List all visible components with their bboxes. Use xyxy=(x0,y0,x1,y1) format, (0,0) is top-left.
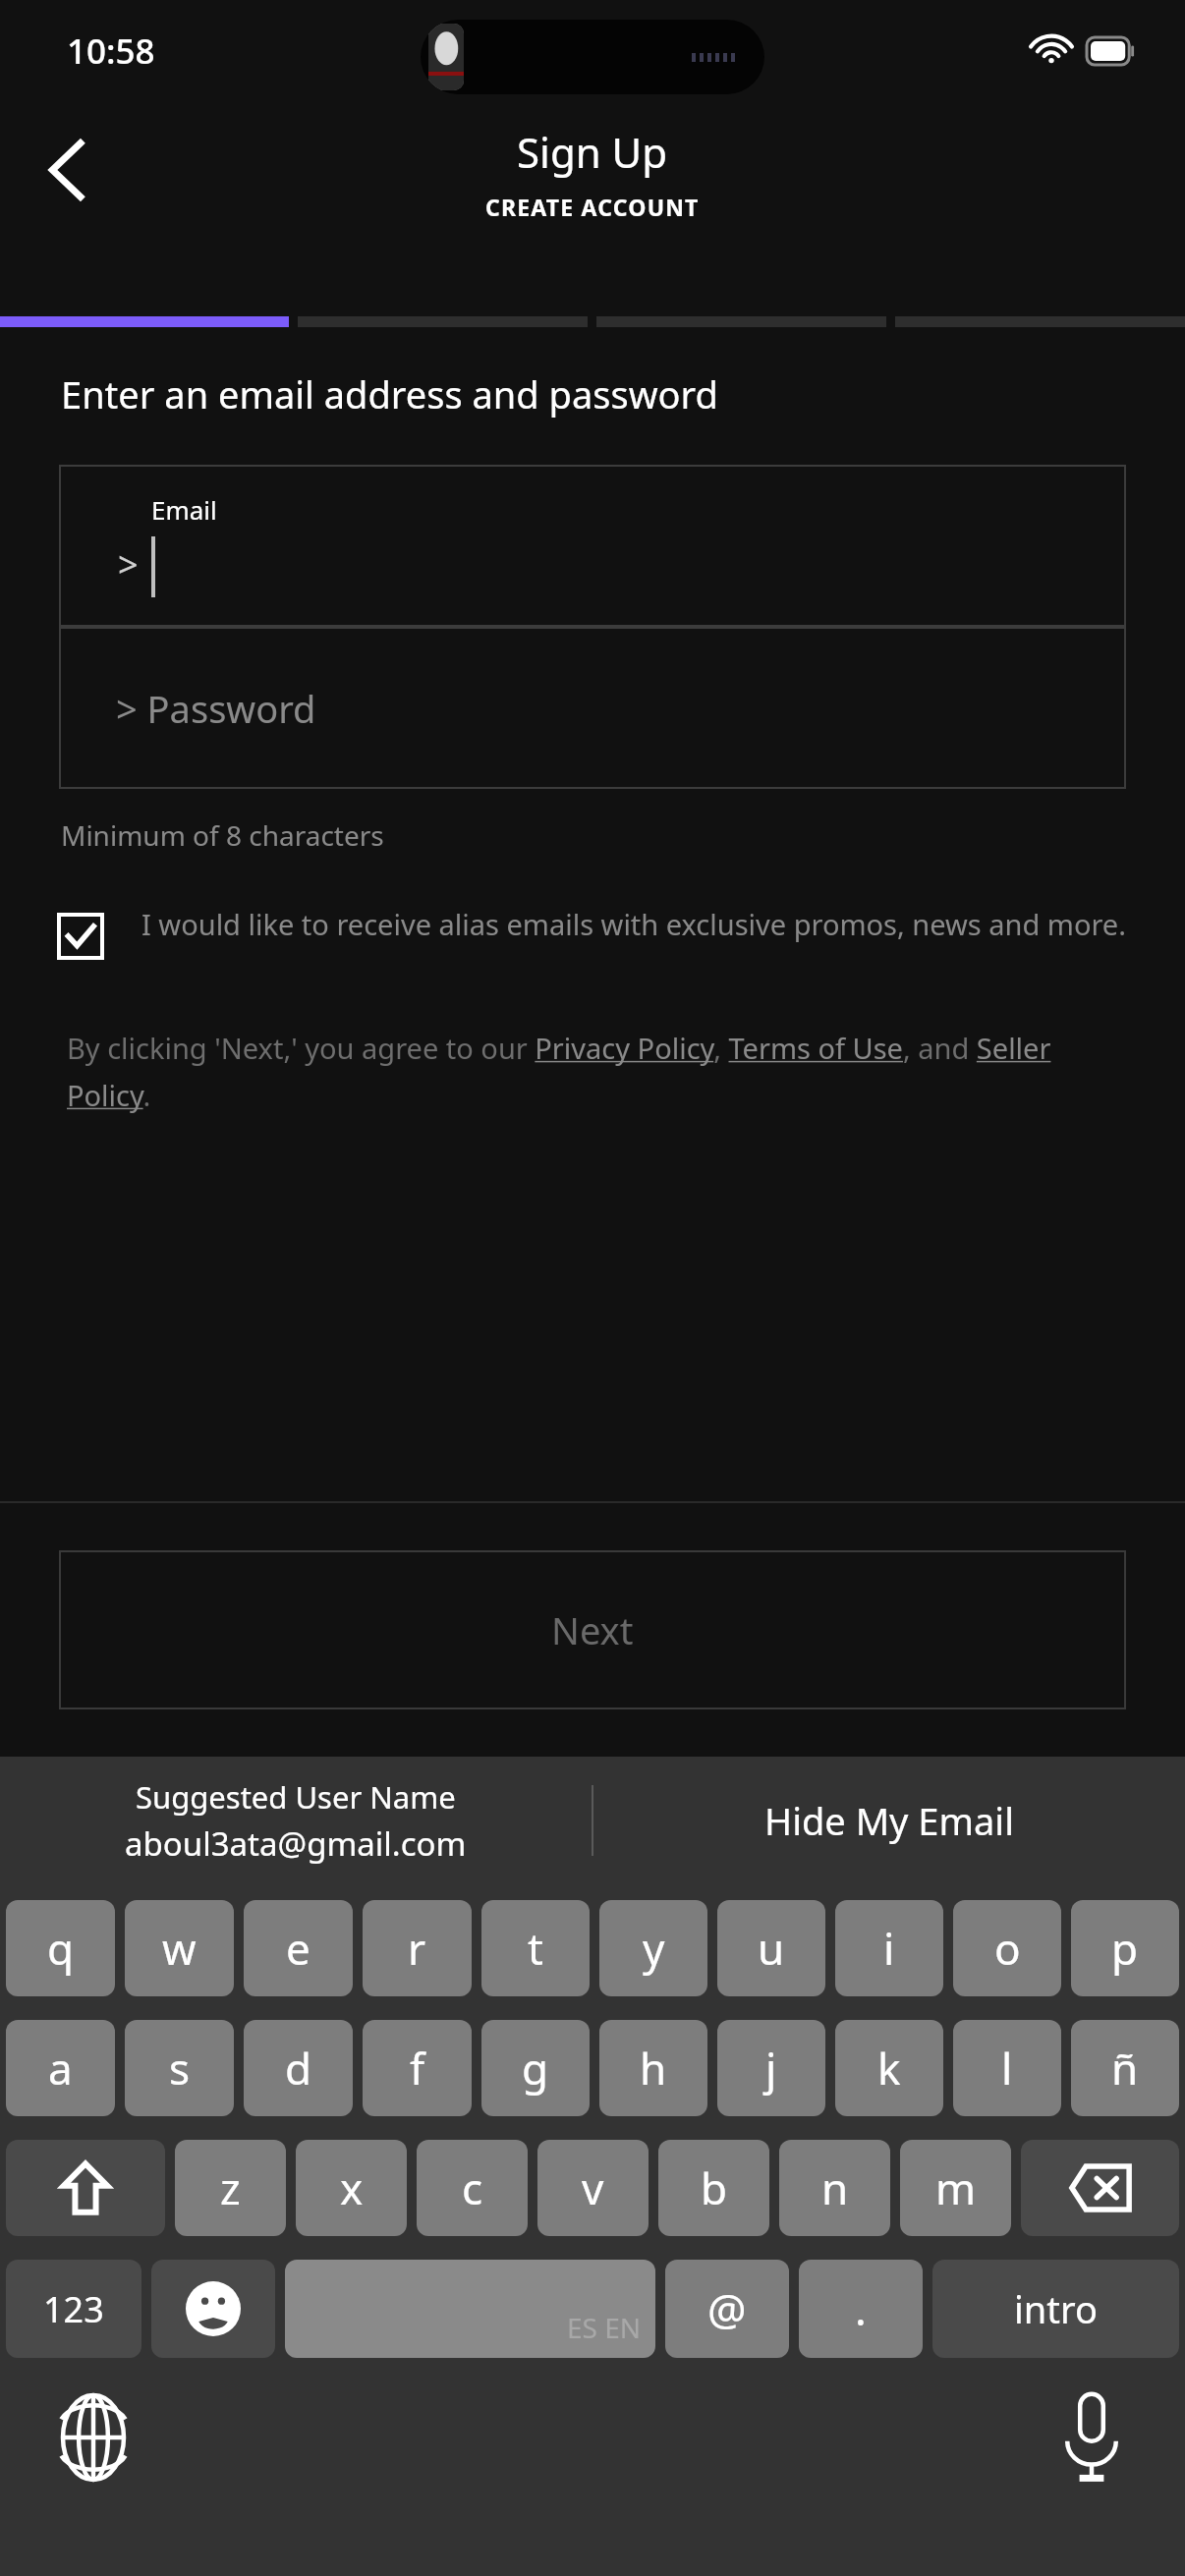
button[interactable]: y xyxy=(599,1900,707,1996)
staticText: p xyxy=(1111,1919,1139,1978)
staticText: w xyxy=(162,1919,197,1978)
button[interactable]: o xyxy=(953,1900,1061,1996)
button[interactable]: q xyxy=(6,1900,115,1996)
staticText: I would like to receive alias emails wit… xyxy=(141,905,1126,943)
staticText: f xyxy=(410,2039,425,2098)
staticText: c xyxy=(462,2158,483,2217)
button[interactable]: Space xyxy=(285,2260,655,2358)
button[interactable]: j xyxy=(717,2020,825,2116)
staticText: i xyxy=(883,1919,895,1978)
button[interactable]: l xyxy=(953,2020,1061,2116)
staticText: > xyxy=(118,540,139,588)
staticText: g xyxy=(522,2039,549,2098)
staticText: . xyxy=(855,2279,867,2338)
staticText: d xyxy=(285,2039,312,2098)
button[interactable]: h xyxy=(599,2020,707,2116)
staticText: Next xyxy=(551,1604,634,1655)
button[interactable]: i xyxy=(835,1900,943,1996)
button[interactable]: c xyxy=(417,2140,528,2236)
staticText: 123 xyxy=(43,2285,104,2333)
staticText: b xyxy=(701,2158,728,2217)
staticText: CREATE ACCOUNT xyxy=(485,192,700,222)
button[interactable]: Suggested User Name xyxy=(0,1757,592,1884)
staticText: Minimum of 8 characters xyxy=(61,816,384,854)
button[interactable]: a xyxy=(6,2020,115,2116)
staticText: r xyxy=(408,1919,426,1978)
staticText: m xyxy=(935,2158,977,2217)
button[interactable]: u xyxy=(717,1900,825,1996)
staticText: 10:58 xyxy=(67,28,155,75)
staticText: y xyxy=(643,1919,665,1978)
button[interactable]: n xyxy=(779,2140,890,2236)
button[interactable]: Back xyxy=(10,112,126,228)
staticText: ES EN xyxy=(567,2309,642,2346)
staticText: Sign Up xyxy=(517,124,668,180)
staticText: Hide My Email xyxy=(764,1795,1014,1846)
button[interactable]: e xyxy=(244,1900,353,1996)
button[interactable]: k xyxy=(835,2020,943,2116)
staticText: s xyxy=(169,2039,191,2098)
staticText: Suggested User Name xyxy=(136,1776,456,1818)
button[interactable]: g xyxy=(481,2020,590,2116)
button[interactable]: Voice input xyxy=(1028,2374,1156,2501)
staticText: intro xyxy=(1014,2283,1098,2334)
button[interactable]: m xyxy=(900,2140,1011,2236)
button[interactable]: By clicking 'Next,' you agree to our Pri… xyxy=(67,1029,1140,1114)
button[interactable]: x xyxy=(296,2140,407,2236)
staticText: t xyxy=(528,1919,543,1978)
staticText: n xyxy=(821,2158,849,2217)
button[interactable]: f xyxy=(363,2020,472,2116)
button[interactable]: Shift xyxy=(6,2140,165,2236)
staticText: k xyxy=(877,2039,901,2098)
button[interactable]: z xyxy=(175,2140,286,2236)
staticText: aboul3ata@gmail.com xyxy=(125,1821,467,1866)
staticText: u xyxy=(758,1919,785,1978)
staticText: v xyxy=(582,2158,604,2217)
button[interactable]: > Password xyxy=(59,627,1126,789)
staticText: x xyxy=(340,2158,364,2217)
button[interactable]: intro xyxy=(932,2260,1179,2358)
button[interactable]: w xyxy=(125,1900,234,1996)
staticText: o xyxy=(994,1919,1021,1978)
button[interactable]: 123 xyxy=(6,2260,141,2358)
button[interactable]: Emoji xyxy=(151,2260,275,2358)
button[interactable]: ñ xyxy=(1071,2020,1179,2116)
button[interactable]: p xyxy=(1071,1900,1179,1996)
button[interactable]: Backspace xyxy=(1021,2140,1179,2236)
button[interactable]: d xyxy=(244,2020,353,2116)
button[interactable]: b xyxy=(658,2140,769,2236)
button[interactable]: . xyxy=(799,2260,923,2358)
button[interactable]: Change language xyxy=(29,2374,157,2501)
button[interactable]: I would like to receive alias emails wit… xyxy=(57,905,1142,952)
button[interactable]: s xyxy=(125,2020,234,2116)
staticText: Enter an email address and password xyxy=(61,368,718,420)
staticText: a xyxy=(48,2039,73,2098)
staticText: h xyxy=(640,2039,667,2098)
staticText: e xyxy=(286,1919,310,1978)
staticText: j xyxy=(765,2039,777,2098)
staticText: l xyxy=(1001,2039,1013,2098)
staticText: z xyxy=(220,2158,241,2217)
button[interactable]: @ xyxy=(665,2260,789,2358)
button[interactable]: Email xyxy=(59,465,1126,627)
staticText: > Password xyxy=(116,683,316,734)
button[interactable]: r xyxy=(363,1900,472,1996)
button[interactable]: v xyxy=(537,2140,649,2236)
staticText: @ xyxy=(707,2279,747,2338)
staticText: ñ xyxy=(1111,2039,1139,2098)
button[interactable]: t xyxy=(481,1900,590,1996)
button[interactable]: Hide My Email xyxy=(593,1757,1185,1884)
staticText: Email xyxy=(151,492,217,527)
button[interactable]: Next xyxy=(59,1550,1126,1709)
staticText: q xyxy=(47,1919,75,1978)
